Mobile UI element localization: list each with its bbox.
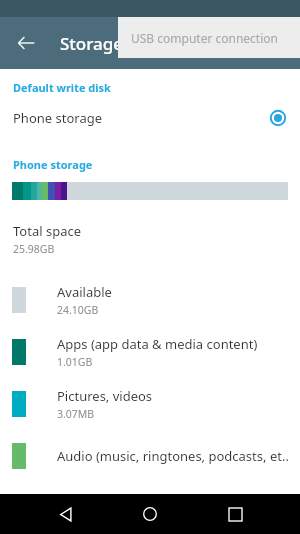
staticText: Available	[57, 283, 112, 301]
button[interactable]: Apps (app data & media content)	[0, 326, 300, 378]
staticText: Pictures, videos	[57, 387, 153, 405]
button[interactable]: Pictures, videos	[0, 378, 300, 430]
button[interactable]: Audio (music, ringtones, podcasts, et..	[0, 430, 300, 482]
staticText: Phone storage	[13, 157, 93, 172]
staticText: Apps (app data & media content)	[57, 335, 258, 353]
staticText: Default write disk	[13, 80, 111, 95]
button[interactable]: Back	[8, 25, 44, 61]
staticText: 25.98GB	[13, 242, 55, 256]
staticText: 1.01GB	[57, 355, 93, 369]
staticText: Audio (music, ringtones, podcasts, et..	[57, 447, 289, 465]
button[interactable]: Phone storage	[0, 101, 300, 135]
staticText: USB computer connection	[131, 30, 278, 46]
button[interactable]: Back	[45, 494, 85, 534]
button[interactable]: USB computer connection	[118, 17, 300, 58]
staticText: Phone storage	[13, 109, 103, 127]
button[interactable]: Home	[130, 494, 170, 534]
button[interactable]: Available	[0, 274, 300, 326]
staticText: 3.07MB	[57, 407, 95, 421]
staticText: Total space	[13, 222, 81, 240]
staticText: Storage	[60, 32, 124, 55]
button[interactable]: Recents	[215, 494, 255, 534]
staticText: 24.10GB	[57, 303, 99, 317]
